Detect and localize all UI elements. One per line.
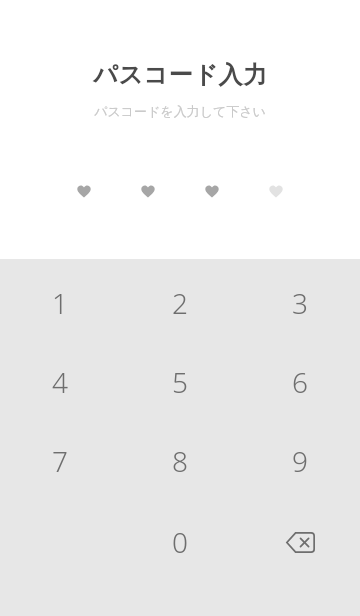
button[interactable]: Delete [264,506,336,578]
staticText: 9 [292,442,308,480]
button[interactable]: 3 [264,267,336,339]
staticText: 3 [292,284,308,322]
staticText: パスコード入力 [93,60,268,90]
button[interactable]: 6 [264,346,336,418]
button[interactable]: 7 [24,425,96,497]
button[interactable]: 0 [144,506,216,578]
button[interactable]: 8 [144,425,216,497]
staticText: 7 [52,442,68,480]
staticText: パスコードを入力して下さい [94,103,266,119]
staticText: 8 [172,442,188,480]
button[interactable]: 9 [264,425,336,497]
staticText: 1 [52,284,68,322]
staticText: 5 [172,363,188,401]
staticText: 6 [292,363,308,401]
button[interactable]: 1 [24,267,96,339]
staticText: 0 [172,523,188,561]
staticText: 4 [52,363,68,401]
button[interactable]: 4 [24,346,96,418]
button[interactable]: 5 [144,346,216,418]
button[interactable]: 2 [144,267,216,339]
staticText: 2 [172,284,188,322]
